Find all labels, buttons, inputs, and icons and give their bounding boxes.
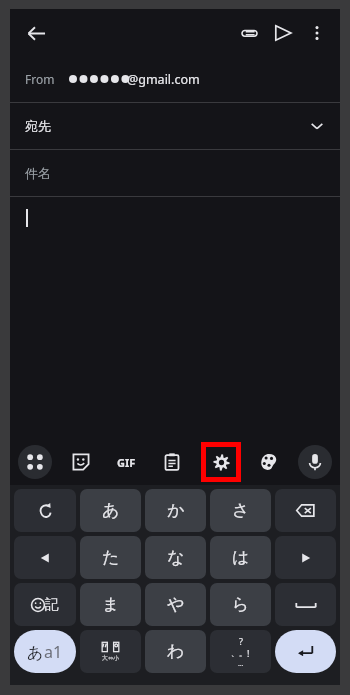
button[interactable]: 宛先 — [10, 103, 340, 149]
button[interactable]: ら — [210, 583, 271, 626]
button[interactable]: た — [80, 536, 141, 579]
staticText: か — [167, 500, 185, 521]
staticText: @gmail.com — [127, 71, 200, 88]
button[interactable]: Space — [275, 583, 336, 626]
button[interactable]: Cursor left — [14, 536, 76, 579]
staticText: ら — [232, 594, 250, 615]
staticText: 宛先 — [25, 118, 51, 134]
staticText: 記 — [45, 596, 59, 614]
button[interactable]: Emoji and symbols — [14, 583, 76, 626]
staticText: … — [238, 659, 244, 669]
button[interactable]: Send — [266, 16, 300, 50]
staticText: わ — [167, 641, 185, 662]
button[interactable]: Attach file — [232, 16, 266, 50]
button[interactable]: わ — [145, 630, 206, 673]
button[interactable]: GIF — [109, 445, 143, 479]
staticText: 、 — [231, 648, 239, 658]
button[interactable]: Themes — [252, 445, 286, 479]
button[interactable]: More options — [300, 16, 334, 50]
staticText: あ — [27, 643, 44, 663]
staticText: た — [102, 547, 120, 568]
button[interactable]: Switch input mode — [14, 630, 76, 673]
button[interactable]: Clipboard — [155, 445, 189, 479]
button[interactable]: Enter — [275, 630, 336, 673]
button[interactable]: ま — [80, 583, 141, 626]
button[interactable]: Backspace — [275, 489, 336, 532]
button[interactable]: Punctuation — [210, 630, 271, 673]
button[interactable]: From — [10, 56, 340, 102]
staticText: GIF — [117, 455, 136, 470]
staticText: ま — [102, 594, 120, 615]
staticText: 大⇔小 — [102, 654, 120, 662]
staticText: な — [167, 547, 185, 568]
button[interactable]: Dakuten — [80, 630, 141, 673]
button[interactable]: Apps — [18, 445, 52, 479]
button[interactable]: Cursor right — [275, 536, 336, 579]
staticText: a1 — [44, 641, 63, 663]
staticText: ? — [239, 635, 243, 647]
staticText: ! — [247, 647, 250, 659]
staticText: や — [167, 594, 185, 615]
button[interactable]: Stickers — [64, 445, 98, 479]
button[interactable]: か — [145, 489, 206, 532]
button[interactable]: な — [145, 536, 206, 579]
button[interactable]: Settings — [206, 447, 236, 477]
button[interactable]: Back — [18, 15, 54, 51]
staticText: 。 — [239, 648, 247, 658]
button[interactable] — [10, 197, 340, 439]
button[interactable]: あ — [80, 489, 141, 532]
button[interactable]: は — [210, 536, 271, 579]
staticText: は — [232, 547, 250, 568]
staticText: あ — [102, 500, 120, 521]
button[interactable]: Voice input — [298, 445, 332, 479]
staticText: From — [25, 71, 55, 87]
button[interactable]: や — [145, 583, 206, 626]
button[interactable]: Undo — [14, 489, 76, 532]
button[interactable]: さ — [210, 489, 271, 532]
staticText: さ — [232, 500, 250, 521]
staticText: 件名 — [25, 165, 51, 181]
button[interactable]: 件名 — [10, 150, 340, 196]
